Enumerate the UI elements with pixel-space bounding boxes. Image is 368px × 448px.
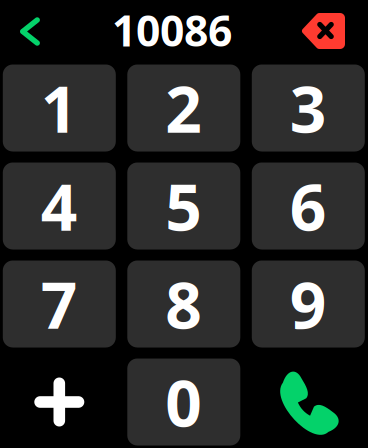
button[interactable]: 9 [252,260,365,347]
staticText: 4 [41,163,78,248]
button[interactable]: 1 [3,64,116,151]
button[interactable]: 6 [252,162,365,249]
button[interactable]: 3 [252,64,365,151]
staticText: 9 [290,261,327,346]
button[interactable]: Call [252,358,365,445]
button[interactable]: 0 [127,358,240,445]
staticText: 2 [165,65,202,150]
button[interactable]: Back [8,9,52,53]
button[interactable]: 2 [127,64,240,151]
staticText: 8 [165,261,202,346]
staticText: 5 [165,163,202,248]
staticText: 10086 [112,2,232,58]
button[interactable]: 5 [127,162,240,249]
staticText: 7 [41,261,78,346]
button[interactable]: Add [3,358,116,445]
staticText: 0 [165,359,202,444]
staticText: 3 [290,65,327,150]
staticText: 1 [41,65,78,150]
button[interactable]: 8 [127,260,240,347]
button[interactable]: 4 [3,162,116,249]
staticText: 6 [290,163,327,248]
button[interactable]: Delete [301,9,347,53]
button[interactable]: 7 [3,260,116,347]
